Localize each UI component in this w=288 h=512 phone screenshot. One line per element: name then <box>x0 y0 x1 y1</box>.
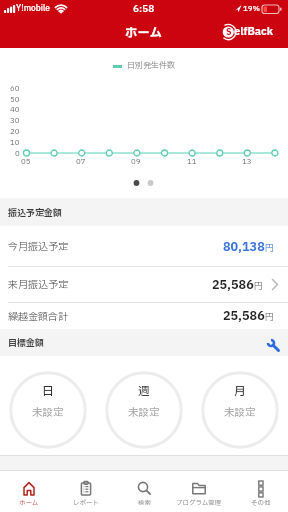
staticText: 13 <box>242 156 252 166</box>
staticText: 10 <box>10 137 20 147</box>
staticText: elfBack <box>234 24 273 40</box>
staticText: 目標金額 <box>8 336 45 349</box>
button[interactable]: プログラム管理 <box>171 471 227 511</box>
staticText: 繰越金額合計 <box>8 309 68 324</box>
staticText: ホーム <box>19 498 39 508</box>
staticText: 09 <box>131 156 141 166</box>
staticText: 週 <box>138 383 150 400</box>
staticText: 月 <box>234 383 246 400</box>
staticText: 検索 <box>138 498 151 508</box>
staticText: 30 <box>10 115 20 125</box>
staticText: 11 <box>187 156 197 166</box>
staticText: その他 <box>251 498 271 508</box>
staticText: 未設定 <box>128 405 160 421</box>
button[interactable]: レポート <box>58 471 114 511</box>
button[interactable]: ホーム <box>1 471 57 511</box>
button[interactable]: 検索 <box>116 471 172 511</box>
staticText: 振込予定金額 <box>8 206 63 219</box>
staticText: ホーム <box>125 24 163 43</box>
staticText: 未設定 <box>224 405 256 421</box>
button[interactable] <box>263 334 287 358</box>
staticText: 80,138円 <box>223 238 274 256</box>
staticText: 05 <box>21 156 31 166</box>
staticText: 60 <box>10 83 20 93</box>
button[interactable]: 繰越金額合計 <box>0 303 288 329</box>
staticText: 日別発生件数 <box>127 60 175 72</box>
staticText: S <box>226 26 232 39</box>
staticText: 25,586円 <box>212 276 263 294</box>
button[interactable]: 今月振込予定 <box>0 226 288 267</box>
staticText: 40 <box>10 104 20 114</box>
staticText: 6:58 <box>133 2 155 16</box>
staticText: 19% <box>243 3 260 14</box>
button[interactable]: 来月振込予定 <box>0 267 288 302</box>
staticText: プログラム管理 <box>176 498 222 508</box>
button[interactable]: S <box>214 18 284 46</box>
button[interactable]: その他 <box>233 471 288 511</box>
button[interactable]: 日 <box>8 370 88 450</box>
staticText: 0 <box>15 148 20 158</box>
staticText: 07 <box>76 156 86 166</box>
staticText: Y!mobile <box>16 3 50 15</box>
staticText: 50 <box>10 94 20 104</box>
staticText: 25,586円 <box>223 307 274 325</box>
button[interactable]: 週 <box>104 370 184 450</box>
staticText: 未設定 <box>32 405 64 421</box>
button[interactable]: 月 <box>200 370 280 450</box>
staticText: 20 <box>10 126 20 136</box>
staticText: 今月振込予定 <box>8 239 68 254</box>
staticText: レポート <box>73 498 99 508</box>
staticText: 日 <box>42 383 54 400</box>
staticText: 来月振込予定 <box>8 277 68 292</box>
